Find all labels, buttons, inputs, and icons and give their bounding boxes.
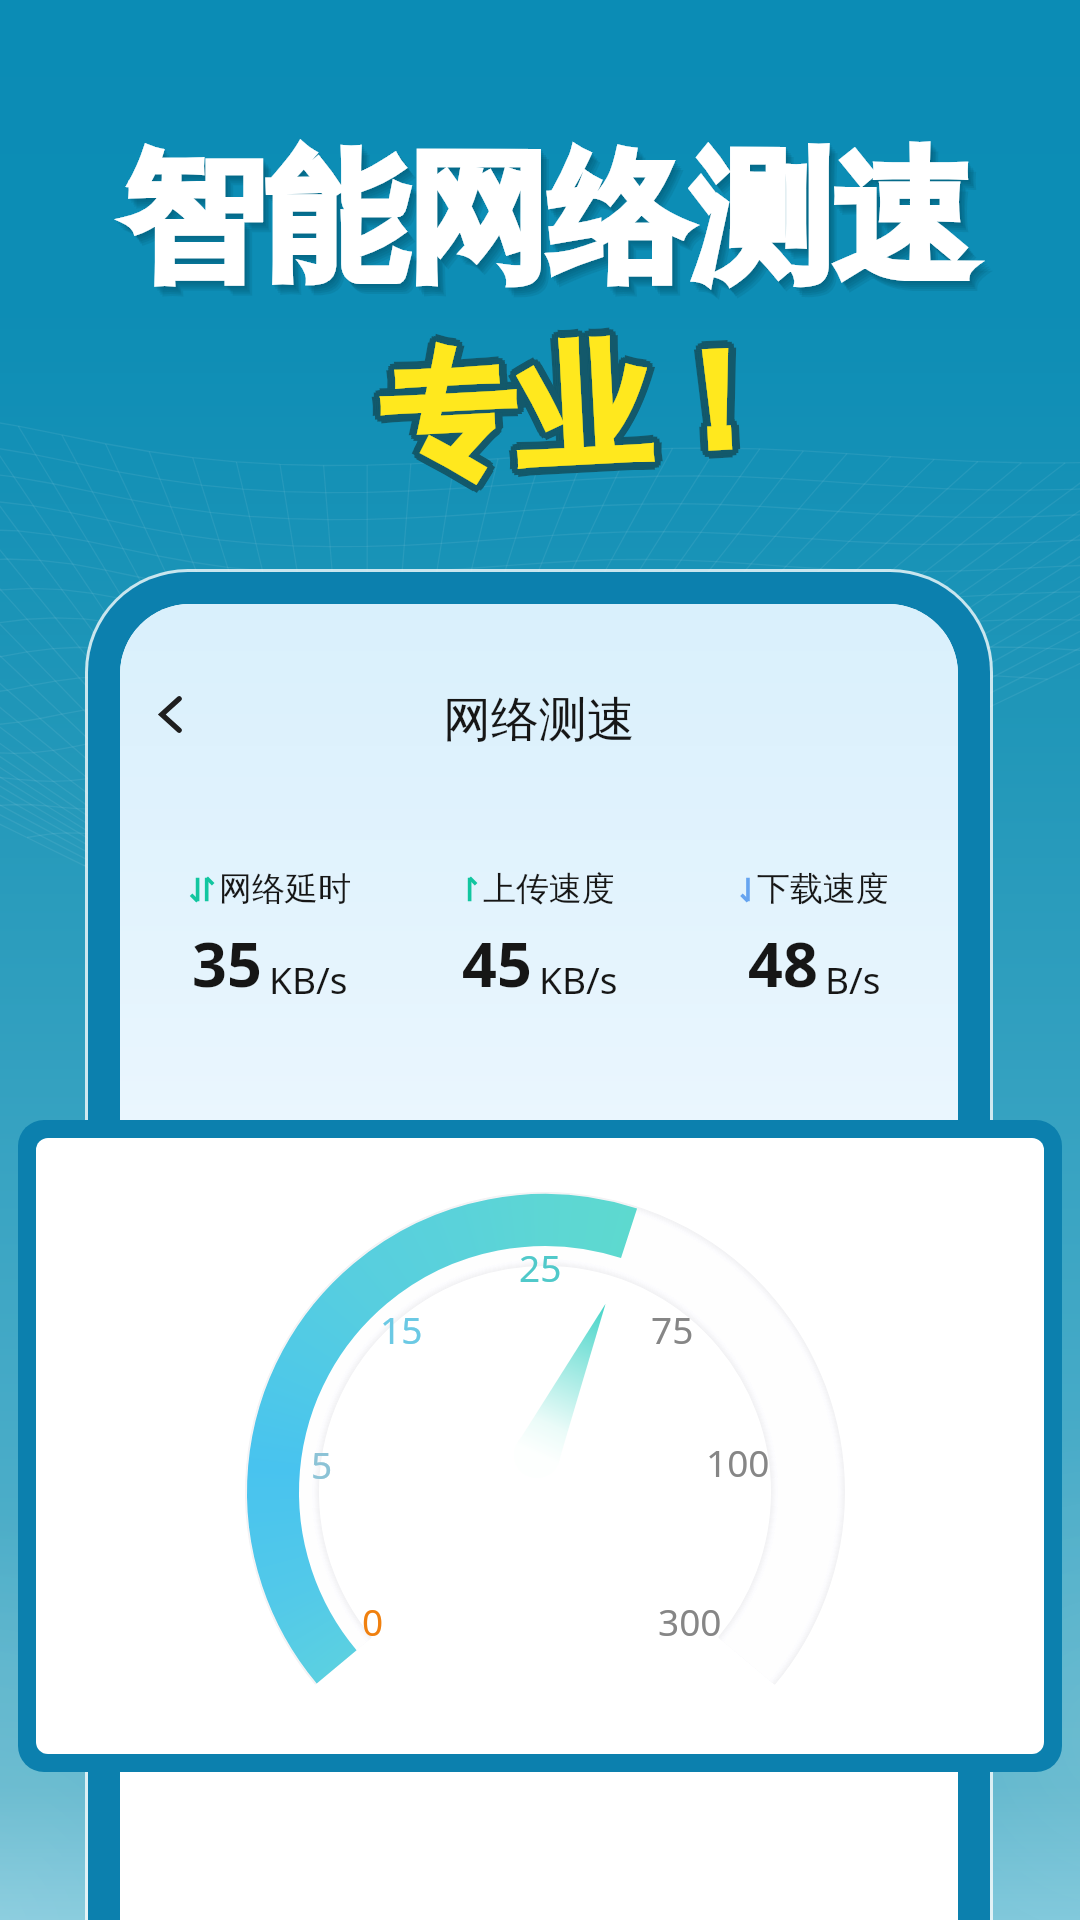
staticText: 专业！ <box>377 316 787 505</box>
staticText: 专业！ <box>379 311 789 501</box>
staticText: 专业！ <box>383 315 793 505</box>
staticText: 专业！ <box>373 314 783 504</box>
staticText: 专业！ <box>383 311 793 501</box>
staticText: 下载速度 <box>757 868 889 910</box>
staticText: 专业！ <box>377 320 787 509</box>
staticText: 专业！ <box>373 322 783 512</box>
staticText: 专业！ <box>378 309 789 499</box>
staticText: 专业！ <box>377 316 787 505</box>
staticText: 智能网络测速 <box>128 138 980 317</box>
staticText: 专业！ <box>381 311 791 501</box>
staticText: 专业！ <box>379 319 789 509</box>
staticText: 300 <box>658 1596 722 1646</box>
staticText: 网络测速 <box>443 690 635 750</box>
staticText: 专业！ <box>381 321 791 511</box>
staticText: 专业！ <box>377 324 788 513</box>
staticText: 专业！ <box>376 308 787 497</box>
staticText: 专业！ <box>373 320 783 510</box>
staticText: 专业！ <box>375 320 785 509</box>
staticText: 智能网络测速 <box>130 140 982 319</box>
staticText: 专业！ <box>371 314 781 504</box>
staticText: 15 <box>380 1304 423 1354</box>
staticText: 专业！ <box>377 312 787 501</box>
staticText: 专业！ <box>374 310 785 499</box>
staticText: 专业！ <box>379 315 789 505</box>
button[interactable]: Back <box>136 680 204 748</box>
staticText: 专业！ <box>377 322 787 511</box>
staticText: 专业！ <box>381 313 791 503</box>
staticText: 45 <box>462 922 532 1005</box>
staticText: 专业！ <box>375 318 785 507</box>
staticText: 专业！ <box>371 318 781 508</box>
staticText: 48 <box>748 922 818 1005</box>
staticText: 专业！ <box>376 310 787 499</box>
staticText: 专业！ <box>379 313 789 503</box>
staticText: 专业！ <box>381 317 791 507</box>
staticText: 专业！ <box>385 315 795 505</box>
staticText: 专业！ <box>373 312 783 502</box>
staticText: 专业！ <box>369 316 779 506</box>
staticText: 35 <box>192 922 262 1005</box>
staticText: 专业！ <box>383 317 793 507</box>
staticText: 专业！ <box>381 319 791 509</box>
staticText: 专业！ <box>383 313 793 503</box>
staticText: 25 <box>519 1242 562 1292</box>
staticText: 专业！ <box>373 316 783 506</box>
staticText: 专业！ <box>371 320 781 510</box>
staticText: 智能网络测速 <box>124 132 976 311</box>
staticText: 0 <box>362 1596 384 1646</box>
staticText: 专业！ <box>371 316 781 506</box>
staticText: 专业！ <box>375 314 785 503</box>
staticText: B/s <box>825 954 881 1004</box>
staticText: 专业！ <box>375 322 785 511</box>
staticText: 专业！ <box>379 317 789 507</box>
staticText: 智能网络测速 <box>125 134 977 313</box>
staticText: 专业！ <box>377 314 787 503</box>
staticText: 智能网络测速 <box>122 130 974 309</box>
staticText: 上传速度 <box>483 868 615 910</box>
staticText: 专业！ <box>383 319 793 509</box>
staticText: KB/s <box>539 954 618 1004</box>
staticText: 100 <box>706 1437 770 1487</box>
staticText: 专业！ <box>371 312 781 502</box>
staticText: 75 <box>651 1304 694 1354</box>
staticText: 专业！ <box>375 312 785 501</box>
staticText: KB/s <box>269 954 348 1004</box>
staticText: 专业！ <box>381 315 791 505</box>
staticText: 专业！ <box>372 310 783 500</box>
staticText: 5 <box>311 1439 333 1489</box>
staticText: 专业！ <box>373 318 783 508</box>
staticText: 专业！ <box>379 321 789 511</box>
staticText: 专业！ <box>377 318 787 507</box>
staticText: 网络延时 <box>219 868 351 910</box>
staticText: 专业！ <box>375 316 785 505</box>
staticText: 智能网络测速 <box>127 136 979 315</box>
staticText: 专业！ <box>380 309 791 499</box>
